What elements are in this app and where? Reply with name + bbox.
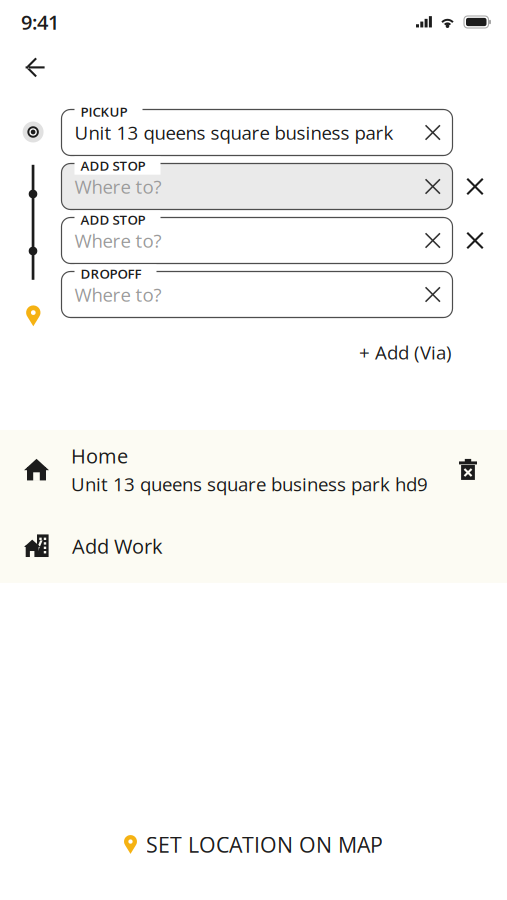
button[interactable]: Remove stop — [452, 167, 493, 206]
staticText: Home — [71, 442, 128, 469]
button[interactable]: + Add (Via) — [354, 330, 457, 374]
staticText: Where to? — [74, 228, 161, 253]
staticText: SET LOCATION ON MAP — [146, 830, 383, 859]
button[interactable]: SET LOCATION ON MAP — [110, 821, 397, 868]
button[interactable]: Clear dropoff — [419, 277, 440, 312]
staticText: Where to? — [74, 282, 161, 307]
button[interactable]: Clear add stop — [419, 169, 440, 204]
button[interactable]: Clear pickup — [419, 115, 440, 150]
staticText: + Add (Via) — [359, 339, 452, 365]
button[interactable]: Home — [0, 430, 507, 509]
button[interactable]: Clear add stop — [419, 223, 440, 258]
staticText: 9:41 — [21, 8, 59, 36]
staticText: Add Work — [72, 532, 163, 559]
staticText: ADD STOP — [80, 156, 145, 175]
button[interactable]: Back — [0, 49, 59, 86]
staticText: Unit 13 queens square business park hd9 — [71, 471, 428, 497]
staticText: DROPOFF — [80, 264, 141, 283]
staticText: PICKUP — [80, 102, 127, 121]
button[interactable]: Add Work — [0, 509, 507, 583]
button[interactable]: Remove stop — [452, 221, 493, 260]
staticText: ADD STOP — [80, 210, 145, 229]
staticText: Where to? — [74, 174, 161, 199]
staticText: Unit 13 queens square business park — [74, 120, 393, 145]
